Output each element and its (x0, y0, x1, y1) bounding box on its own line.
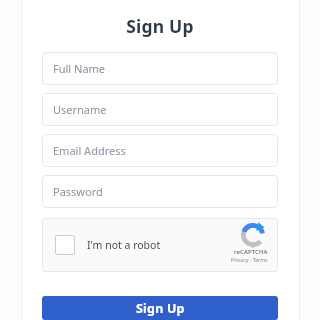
button[interactable]: Password (42, 175, 278, 208)
staticText: Sign Up (136, 300, 185, 317)
staticText: reCAPTCHA (234, 248, 268, 256)
staticText: Password (53, 184, 103, 199)
button[interactable]: Full Name (42, 52, 278, 85)
button[interactable]: Sign Up (42, 296, 278, 320)
staticText: Sign Up (0, 14, 320, 38)
staticText: I'm not a robot (87, 238, 161, 252)
button[interactable]: Email Address (42, 134, 278, 167)
staticText: Email Address (53, 143, 126, 158)
staticText: Privacy - Terms (231, 256, 268, 263)
staticText: Full Name (53, 61, 106, 76)
button[interactable]: Username (42, 93, 278, 126)
button[interactable]: I'm not a robot checkbox (55, 235, 75, 255)
staticText: Username (53, 102, 107, 117)
